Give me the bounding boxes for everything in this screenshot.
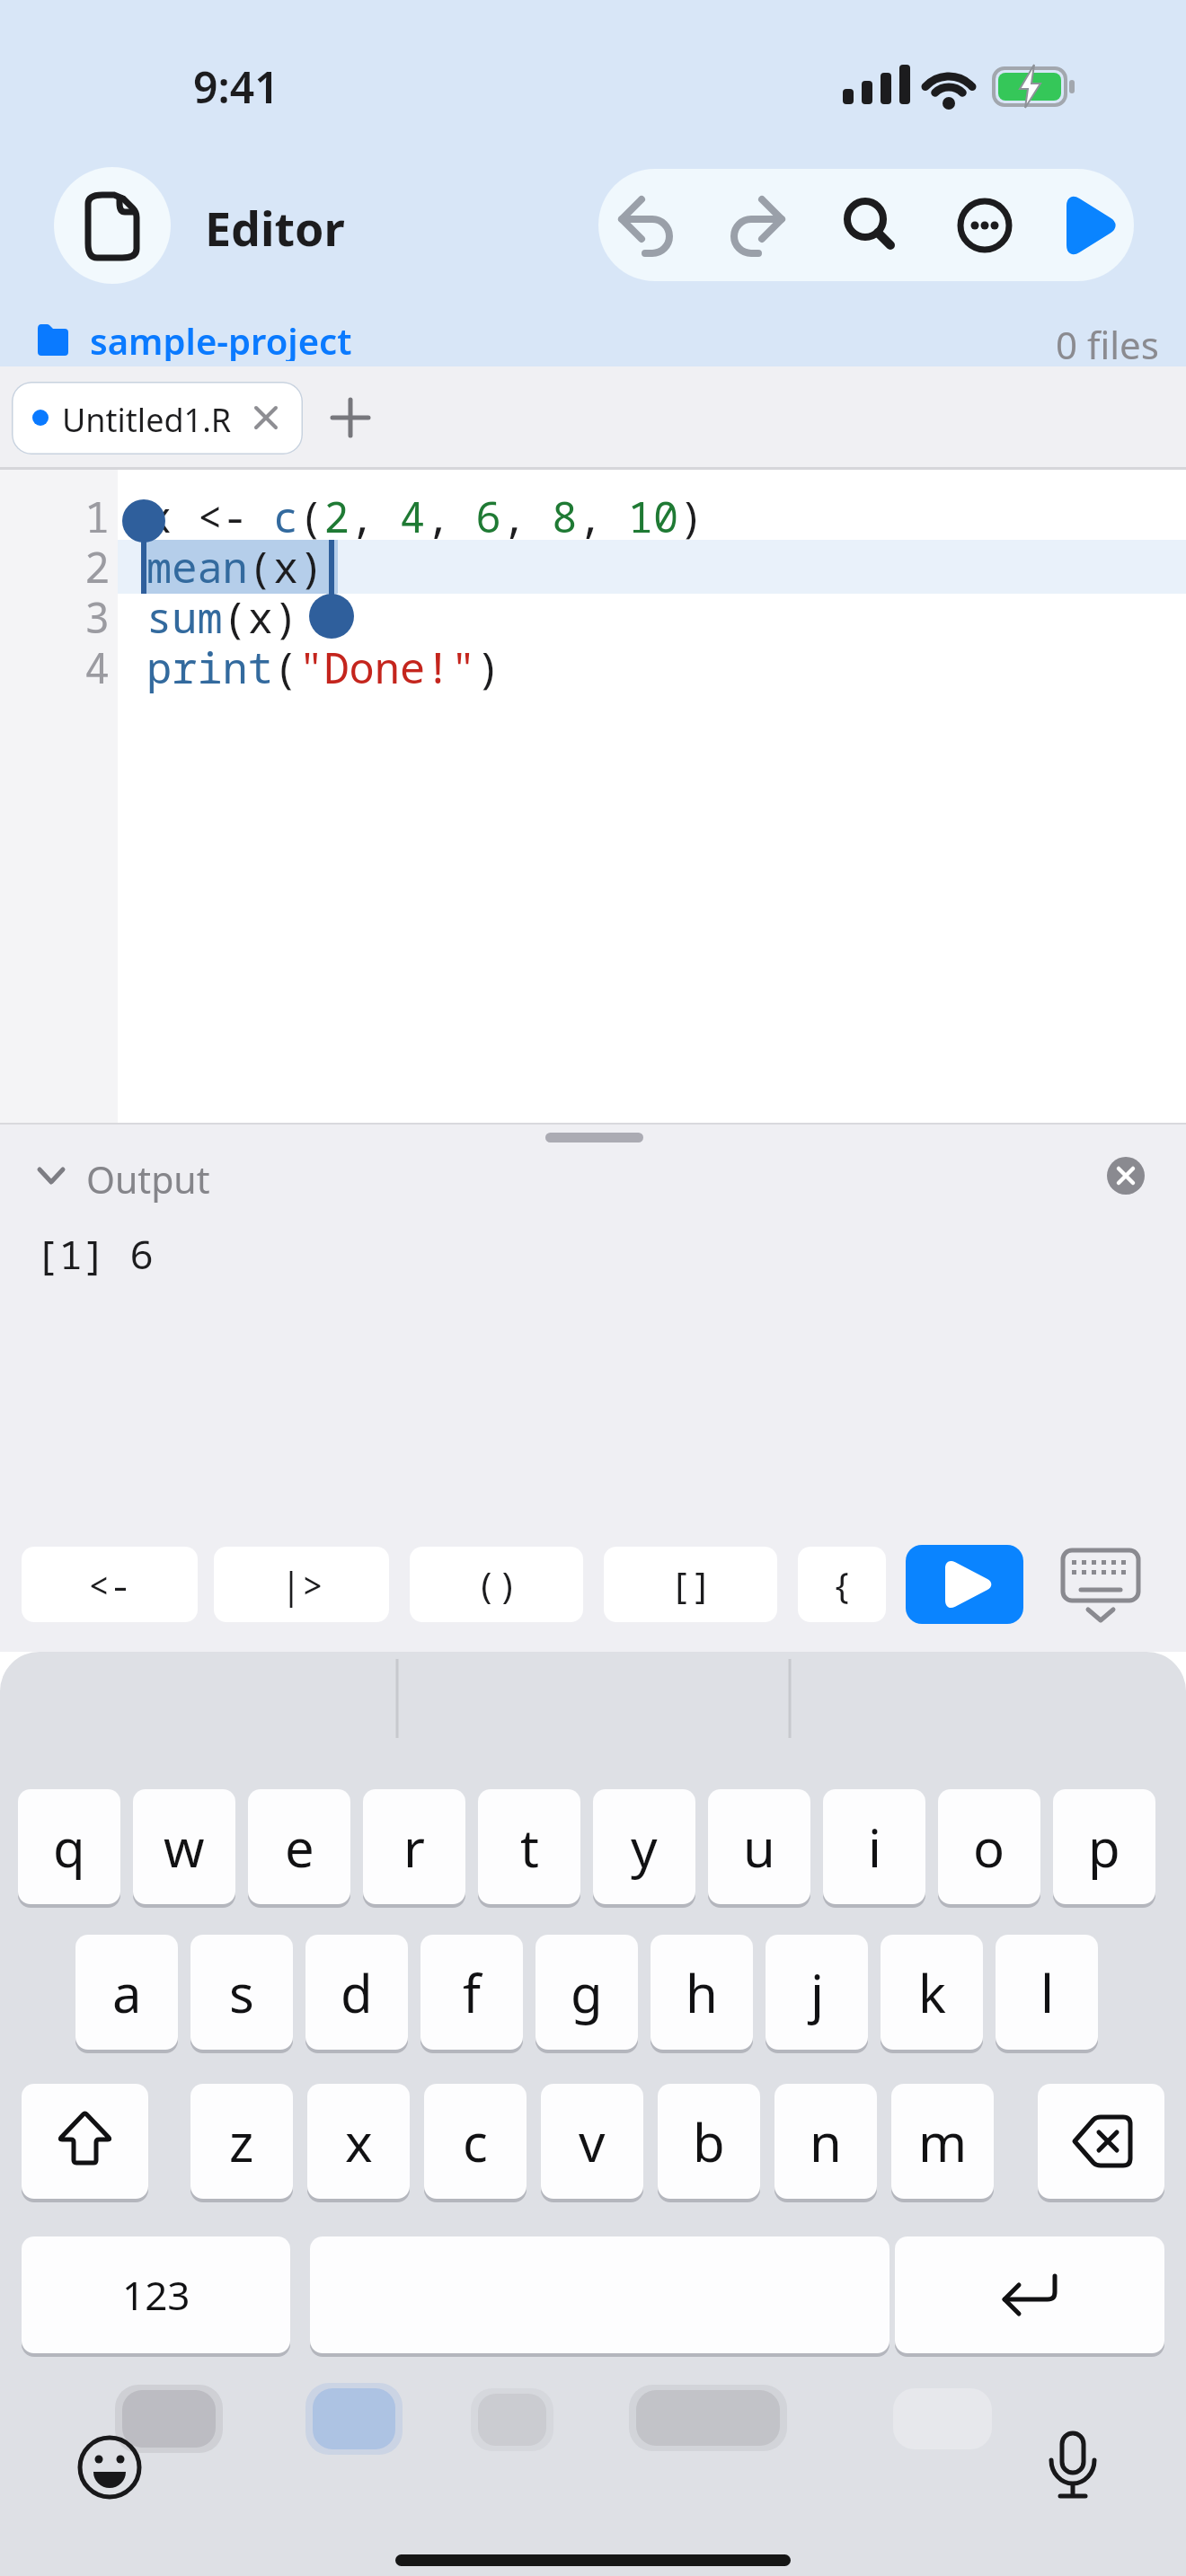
staticText: Output [86,1154,210,1204]
button[interactable] [310,2236,889,2353]
staticText: [] [669,1560,712,1609]
staticText: sum(x) [146,588,299,646]
staticText: |> [280,1560,323,1609]
button[interactable] [813,169,920,281]
staticText: m [918,2106,968,2177]
button[interactable]: v [541,2084,643,2199]
staticText: j [810,1957,824,2028]
staticText: mean(x) [146,538,324,595]
button[interactable]: e [248,1789,350,1904]
button[interactable]: Output [27,1150,261,1204]
staticText: 4 [84,639,111,696]
staticText: 123 [122,2268,190,2322]
button[interactable] [22,2084,148,2199]
staticText: { [831,1560,853,1609]
button[interactable]: i [823,1789,925,1904]
button[interactable]: p [1053,1789,1155,1904]
staticText: d [341,1957,373,2028]
staticText: o [973,1812,1005,1883]
staticText: Editor [205,196,345,260]
button[interactable] [1107,1157,1145,1195]
button[interactable]: () [410,1547,583,1622]
button[interactable]: c [424,2084,527,2199]
staticText: () [475,1560,518,1609]
button[interactable] [598,169,706,281]
button[interactable]: z [190,2084,293,2199]
button[interactable] [1038,2084,1164,2199]
button[interactable]: Untitled1.R [12,382,303,454]
staticText: Untitled1.R [62,398,232,442]
button[interactable]: y [593,1789,695,1904]
button[interactable]: q [18,1789,120,1904]
staticText: k [918,1957,946,2028]
staticText: g [571,1957,603,2028]
button[interactable]: n [774,2084,877,2199]
button[interactable]: a [75,1935,178,2050]
staticText: i [868,1812,881,1883]
staticText: a [112,1957,142,2028]
staticText: p [1088,1812,1120,1883]
button[interactable] [319,386,382,449]
staticText: 2 [84,538,111,595]
staticText: y [631,1812,658,1883]
button[interactable]: |> [214,1547,389,1622]
button[interactable]: t [478,1789,580,1904]
staticText: s [229,1957,254,2028]
button[interactable] [1056,1543,1146,1628]
staticText: w [164,1812,205,1883]
button[interactable]: x [307,2084,410,2199]
staticText: r [403,1812,425,1883]
button[interactable]: g [535,1935,638,2050]
staticText: f [463,1957,481,2028]
staticText: t [520,1812,539,1883]
staticText: l [1040,1957,1054,2028]
button[interactable]: o [938,1789,1040,1904]
button[interactable]: m [891,2084,994,2199]
button[interactable]: 123 [22,2236,290,2353]
button[interactable]: r [363,1789,465,1904]
button[interactable]: <- [22,1547,198,1622]
staticText: e [285,1812,314,1883]
button[interactable] [706,169,813,281]
staticText: v [579,2106,606,2177]
staticText: 9:41 [193,57,373,116]
button[interactable] [895,2236,1164,2353]
button[interactable] [54,167,171,284]
button[interactable]: u [708,1789,810,1904]
button[interactable]: h [651,1935,753,2050]
button[interactable]: f [420,1935,523,2050]
button[interactable]: sample-project [38,316,300,361]
staticText: print("Done!") [146,639,501,696]
staticText: b [693,2106,725,2177]
button[interactable]: [] [604,1547,777,1622]
staticText: z [229,2106,254,2177]
staticText: 0 files [1056,319,1159,370]
staticText: 1 [84,488,111,545]
staticText: x <- c(2, 4, 6, 8, 10) [146,488,704,545]
button[interactable] [906,1545,1023,1624]
staticText: 3 [84,588,111,646]
staticText: x [345,2106,373,2177]
staticText: q [53,1812,85,1883]
button[interactable] [65,2422,155,2512]
staticText: u [743,1812,775,1883]
button[interactable] [1027,169,1134,281]
button[interactable] [920,169,1027,281]
button[interactable]: b [658,2084,760,2199]
button[interactable]: j [766,1935,868,2050]
button[interactable] [1028,2422,1118,2512]
staticText: h [686,1957,718,2028]
staticText: sample-project [90,316,352,361]
staticText: c [463,2106,488,2177]
button[interactable]: s [190,1935,293,2050]
staticText: n [810,2106,842,2177]
button[interactable]: l [996,1935,1098,2050]
button[interactable]: w [133,1789,235,1904]
button[interactable]: { [798,1547,886,1622]
button[interactable]: d [305,1935,408,2050]
staticText: <- [88,1560,131,1609]
button[interactable]: k [881,1935,983,2050]
staticText: [1] 6 [35,1227,154,1281]
